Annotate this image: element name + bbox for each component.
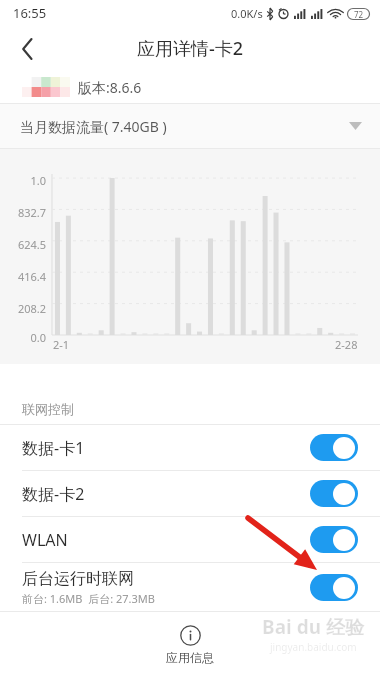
staticText: jingyan.baidu.com xyxy=(270,640,357,654)
staticText: 数据-卡1 xyxy=(22,437,85,459)
button[interactable]: 开关 xyxy=(310,480,358,507)
staticText: 416.4 xyxy=(0,269,46,284)
staticText: 数据-卡2 xyxy=(22,483,85,505)
button[interactable]: WLAN xyxy=(0,517,380,562)
button[interactable]: 应用信息 xyxy=(166,625,214,665)
button[interactable]: 当月数据流量( 7.40GB ) xyxy=(0,104,380,148)
staticText: 72 xyxy=(354,9,364,20)
staticText: 联网控制 xyxy=(22,401,74,417)
staticText: 2-28 xyxy=(335,337,358,352)
staticText: 0.0K/s xyxy=(231,6,263,21)
staticText: 版本:8.6.6 xyxy=(78,78,142,97)
staticText: 2-1 xyxy=(53,337,70,352)
staticText: 当月数据流量( 7.40GB ) xyxy=(20,117,167,136)
button[interactable]: 数据-卡1 xyxy=(0,425,380,470)
staticText: 208.2 xyxy=(0,301,46,316)
button[interactable]: 开关 xyxy=(310,526,358,553)
staticText: 832.7 xyxy=(0,205,46,220)
button[interactable]: 返回 xyxy=(8,29,48,69)
button[interactable]: 开关 xyxy=(310,434,358,461)
button[interactable]: 开关 xyxy=(310,574,358,601)
staticText: Bai du 经验 xyxy=(262,614,364,640)
staticText: 16:55 xyxy=(13,4,47,22)
staticText: WLAN xyxy=(22,529,68,551)
staticText: 前台: 1.6MB 后台: 27.3MB xyxy=(22,591,155,606)
button[interactable]: 数据-卡2 xyxy=(0,471,380,516)
staticText: 应用详情-卡2 xyxy=(137,36,244,61)
staticText: 应用信息 xyxy=(166,650,214,665)
staticText: 0.0 xyxy=(0,330,46,345)
button[interactable]: 后台运行时联网 xyxy=(0,563,380,611)
staticText: 后台运行时联网 xyxy=(22,569,134,589)
staticText: 1.0 xyxy=(0,173,46,188)
staticText: 624.5 xyxy=(0,237,46,252)
